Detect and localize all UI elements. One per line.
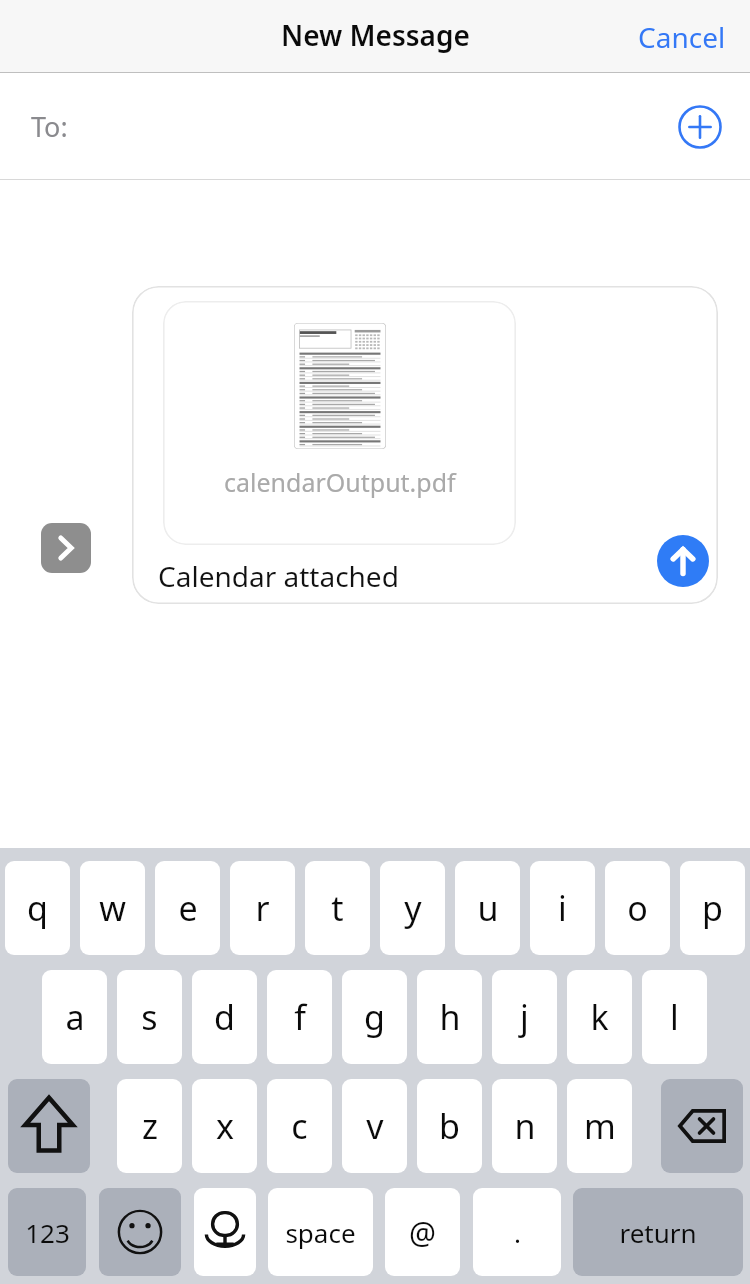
staticText: New Message — [281, 16, 470, 54]
staticText: @ — [409, 1212, 436, 1253]
button[interactable]: Backspace — [661, 1079, 743, 1173]
staticText: space — [285, 1215, 356, 1250]
staticText: b — [439, 1103, 460, 1149]
button[interactable]: c — [267, 1079, 332, 1173]
button[interactable]: b — [417, 1079, 482, 1173]
button[interactable]: t — [305, 861, 370, 955]
button[interactable]: m — [567, 1079, 632, 1173]
button[interactable]: w — [80, 861, 145, 955]
button[interactable]: u — [455, 861, 520, 955]
staticText: l — [670, 994, 679, 1040]
button[interactable]: Expand — [41, 523, 91, 573]
button[interactable]: f — [267, 970, 332, 1064]
staticText: o — [627, 885, 648, 931]
staticText: Calendar attached — [158, 557, 399, 595]
staticText: q — [27, 885, 48, 931]
button[interactable]: d — [192, 970, 257, 1064]
button[interactable]: j — [492, 970, 557, 1064]
button[interactable]: . — [473, 1188, 561, 1276]
button[interactable]: l — [642, 970, 707, 1064]
button[interactable]: 123 — [8, 1188, 86, 1276]
staticText: c — [291, 1103, 308, 1149]
staticText: . — [514, 1215, 521, 1250]
staticText: v — [366, 1103, 384, 1149]
button[interactable]: e — [155, 861, 220, 955]
button[interactable]: Dictation — [194, 1188, 256, 1276]
staticText: a — [65, 994, 85, 1040]
staticText: m — [584, 1103, 616, 1149]
button[interactable]: v — [342, 1079, 407, 1173]
staticText: y — [404, 885, 422, 931]
staticText: r — [255, 885, 270, 931]
staticText: z — [142, 1103, 158, 1149]
staticText: w — [99, 885, 126, 931]
staticText: e — [178, 885, 198, 931]
button[interactable]: return — [573, 1188, 743, 1276]
button[interactable]: Shift — [8, 1079, 90, 1173]
staticText: x — [216, 1103, 234, 1149]
button[interactable]: calendarOutput.pdf — [163, 301, 516, 545]
button[interactable]: o — [605, 861, 670, 955]
staticText: calendarOutput.pdf — [224, 465, 456, 499]
staticText: f — [294, 994, 306, 1040]
staticText: 123 — [25, 1215, 70, 1250]
button[interactable]: n — [492, 1079, 557, 1173]
button[interactable]: s — [117, 970, 182, 1064]
button[interactable]: @ — [385, 1188, 460, 1276]
staticText: g — [364, 994, 385, 1040]
staticText: To: — [31, 108, 68, 145]
button[interactable]: k — [567, 970, 632, 1064]
button[interactable]: r — [230, 861, 295, 955]
staticText: u — [477, 885, 499, 931]
button[interactable]: q — [5, 861, 70, 955]
staticText: k — [590, 994, 609, 1040]
staticText: return — [619, 1215, 697, 1250]
staticText: p — [702, 885, 723, 931]
staticText: j — [520, 994, 529, 1040]
button[interactable]: i — [530, 861, 595, 955]
staticText: n — [514, 1103, 536, 1149]
button[interactable]: Cancel — [632, 10, 732, 64]
staticText: s — [141, 994, 158, 1040]
staticText: h — [439, 994, 461, 1040]
button[interactable]: p — [680, 861, 745, 955]
button[interactable]: z — [117, 1079, 182, 1173]
button[interactable]: Send — [657, 535, 709, 587]
button[interactable]: x — [192, 1079, 257, 1173]
staticText: d — [214, 994, 235, 1040]
staticText: Cancel — [638, 18, 726, 56]
button[interactable]: space — [268, 1188, 373, 1276]
button[interactable]: h — [417, 970, 482, 1064]
button[interactable]: calendarOutput.pdf — [132, 286, 718, 604]
staticText: i — [558, 885, 567, 931]
button[interactable]: g — [342, 970, 407, 1064]
button[interactable]: y — [380, 861, 445, 955]
button[interactable]: a — [42, 970, 107, 1064]
staticText: t — [331, 885, 344, 931]
button[interactable]: Add contact — [678, 105, 722, 149]
button[interactable]: Emoji — [99, 1188, 181, 1276]
